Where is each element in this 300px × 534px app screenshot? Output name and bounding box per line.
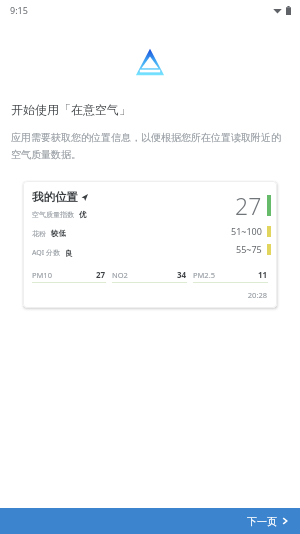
staticText: 开始使用「在意空气」 bbox=[11, 102, 131, 117]
staticText: 27 bbox=[235, 190, 262, 221]
staticText: 我的位置 bbox=[32, 190, 78, 204]
staticText: 9:15 bbox=[10, 4, 28, 16]
button[interactable]: 我的位置 bbox=[23, 181, 277, 308]
staticText: 应用需要获取您的位置信息，以便根据您所在位置读取附近的空气质量数据。 bbox=[11, 131, 288, 161]
staticText: 27 bbox=[96, 269, 106, 280]
staticText: 良 bbox=[65, 249, 73, 258]
staticText: 优 bbox=[79, 210, 87, 219]
button[interactable]: 下一页 bbox=[0, 508, 300, 534]
staticText: 20:28 bbox=[23, 290, 267, 300]
staticText: 花粉 bbox=[32, 229, 46, 238]
staticText: 55~75 bbox=[236, 243, 262, 255]
staticText: 34 bbox=[177, 269, 187, 280]
staticText: PM2.5 bbox=[193, 270, 215, 280]
other: Wi-Fi bbox=[273, 6, 282, 15]
staticText: 下一页 bbox=[247, 515, 277, 528]
staticText: 空气质量指数 bbox=[32, 210, 74, 219]
staticText: AQI 分数 bbox=[32, 248, 60, 258]
staticText: PM10 bbox=[32, 270, 52, 280]
other: Battery bbox=[286, 6, 291, 15]
staticText: 较低 bbox=[51, 229, 66, 238]
staticText: NO2 bbox=[112, 270, 128, 280]
staticText: 11 bbox=[258, 269, 268, 280]
staticText: 51~100 bbox=[231, 225, 262, 237]
